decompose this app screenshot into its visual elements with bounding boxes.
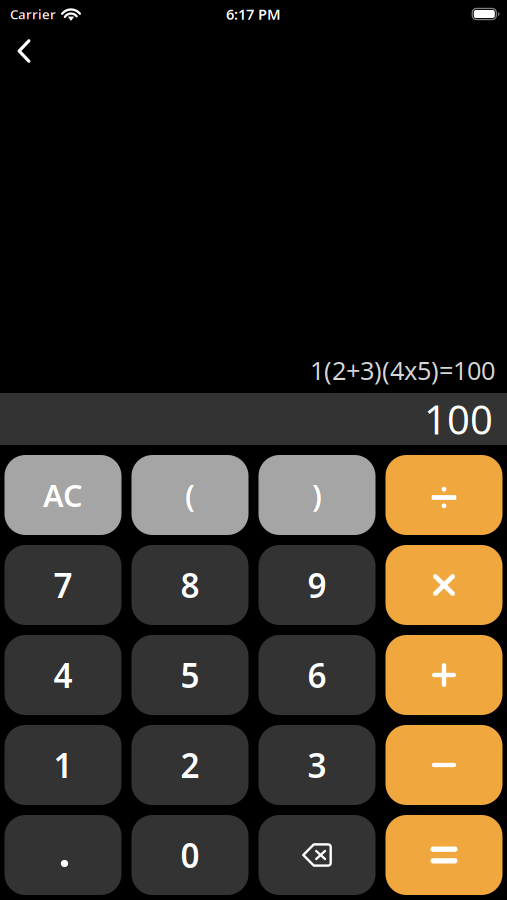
button[interactable]: 0 [131, 815, 248, 895]
staticText: 3 [307, 743, 326, 787]
staticText: 0 [180, 833, 199, 877]
staticText: 9 [307, 563, 326, 607]
staticText: Carrier [10, 5, 56, 23]
button[interactable]: Multiply [385, 545, 502, 625]
staticText: 8 [180, 563, 199, 607]
button[interactable]: Delete [258, 815, 375, 895]
button[interactable]: AC [4, 455, 121, 535]
button[interactable]: Divide [385, 455, 502, 535]
button[interactable]: 3 [258, 725, 375, 805]
staticText: ( [185, 475, 195, 515]
button[interactable]: 2 [131, 725, 248, 805]
staticText: 5 [180, 653, 199, 697]
button[interactable]: Plus [385, 635, 502, 715]
button[interactable]: 8 [131, 545, 248, 625]
button[interactable]: 6 [258, 635, 375, 715]
button[interactable]: ( [131, 455, 248, 535]
button[interactable]: 5 [131, 635, 248, 715]
staticText: 7 [53, 563, 72, 607]
button[interactable]: Minus [385, 725, 502, 805]
button[interactable]: Decimal point [4, 815, 121, 895]
button[interactable]: Equals [385, 815, 502, 895]
button[interactable]: 9 [258, 545, 375, 625]
button[interactable]: 7 [4, 545, 121, 625]
button[interactable]: 4 [4, 635, 121, 715]
staticText: 4 [53, 653, 72, 697]
staticText: 100 [424, 392, 493, 445]
button[interactable]: ) [258, 455, 375, 535]
staticText: 6 [307, 653, 326, 697]
staticText: 2 [180, 743, 199, 787]
staticText: AC [43, 475, 83, 515]
staticText: 6:17 PM [226, 4, 281, 24]
button[interactable]: 1 [4, 725, 121, 805]
staticText: ) [312, 475, 322, 515]
staticText: 1(2+3)(4x5)=100 [310, 353, 495, 387]
staticText: 1 [53, 743, 72, 787]
button[interactable]: Back [2, 29, 46, 73]
